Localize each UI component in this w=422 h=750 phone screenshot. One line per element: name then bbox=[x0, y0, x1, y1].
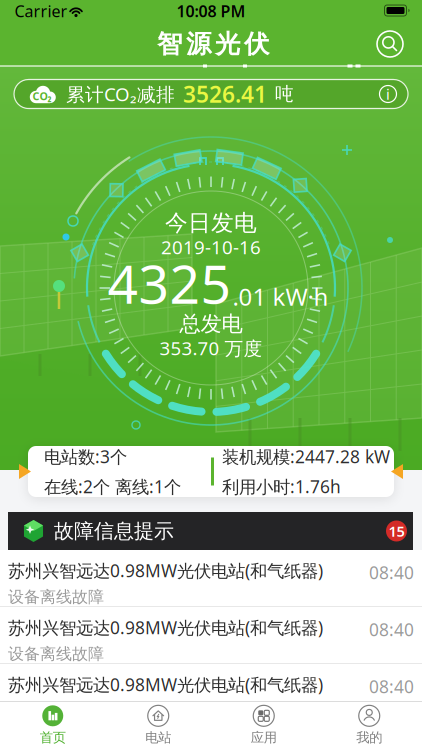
button[interactable]: 故障信息提示 bbox=[8, 512, 413, 550]
staticText: 苏州兴智远达0.98MW光伏电站(和气纸器) bbox=[8, 673, 323, 696]
staticText: 利用小时:1.76h bbox=[222, 475, 341, 498]
staticText: 08:40 bbox=[369, 618, 414, 641]
staticText: .01 kW·h bbox=[232, 280, 328, 312]
button[interactable]: Search bbox=[375, 29, 405, 59]
staticText: Carrier bbox=[14, 0, 67, 22]
staticText: 10:08 PM bbox=[176, 0, 245, 22]
staticText: 4325 bbox=[107, 248, 231, 318]
staticText: 在线:2个 离线:1个 bbox=[44, 475, 181, 498]
staticText: 08:40 bbox=[369, 675, 414, 698]
button[interactable]: 苏州兴智远达0.98MW光伏电站(和气纸器) bbox=[0, 664, 422, 721]
staticText: 智源光伏 bbox=[157, 28, 269, 59]
button[interactable]: 首页 bbox=[0, 701, 105, 750]
button[interactable]: 苏州兴智远达0.98MW光伏电站(和气纸器) bbox=[0, 607, 422, 664]
staticText: CO₂ bbox=[32, 89, 51, 103]
button[interactable]: 苏州兴智远达0.98MW光伏电站(和气纸器) bbox=[0, 550, 422, 607]
staticText: 今日发电 bbox=[165, 209, 257, 237]
staticText: 设备离线故障 bbox=[8, 587, 104, 607]
staticText: 电站 bbox=[145, 729, 171, 746]
staticText: 首页 bbox=[40, 729, 66, 746]
button[interactable]: Next bbox=[391, 464, 403, 479]
staticText: 累计CO₂减排 bbox=[66, 82, 175, 106]
button[interactable]: CO₂ bbox=[14, 79, 408, 108]
staticText: 电站数:3个 bbox=[44, 445, 127, 468]
staticText: 应用 bbox=[251, 729, 277, 746]
staticText: 353.70 万度 bbox=[159, 336, 262, 360]
staticText: 设备离线故障 bbox=[8, 644, 104, 664]
staticText: 2019-10-16 bbox=[161, 235, 261, 259]
button[interactable]: 应用 bbox=[211, 701, 316, 750]
button[interactable]: 我的 bbox=[316, 701, 422, 750]
staticText: 吨 bbox=[275, 82, 294, 105]
staticText: i bbox=[386, 84, 390, 104]
staticText: 3526.41 bbox=[183, 79, 267, 109]
staticText: 设备离线故障 bbox=[8, 701, 104, 721]
staticText: 装机规模:2447.28 kW bbox=[222, 445, 390, 468]
staticText: 总发电 bbox=[179, 311, 242, 337]
staticText: 苏州兴智远达0.98MW光伏电站(和气纸器) bbox=[8, 616, 323, 639]
staticText: 08:40 bbox=[369, 561, 414, 584]
button[interactable]: 电站数:3个 bbox=[28, 446, 394, 497]
staticText: 苏州兴智远达0.98MW光伏电站(和气纸器) bbox=[8, 559, 323, 582]
staticText: 故障信息提示 bbox=[54, 519, 174, 543]
button[interactable]: 电站 bbox=[105, 701, 211, 750]
button[interactable]: Previous bbox=[19, 464, 31, 479]
staticText: 我的 bbox=[356, 729, 382, 746]
staticText: 15 bbox=[388, 521, 404, 541]
